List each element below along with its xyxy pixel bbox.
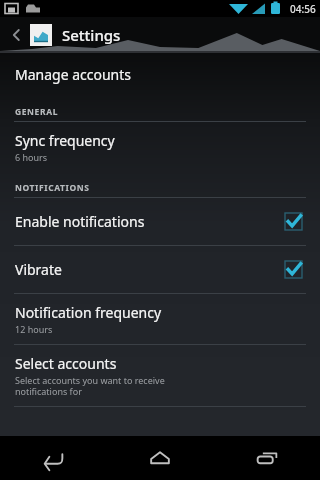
button[interactable]: Sync frequency	[0, 122, 320, 172]
staticText: Enable notifications	[15, 212, 285, 231]
staticText: Settings	[62, 25, 121, 45]
button[interactable]: Notification frequency	[0, 294, 320, 344]
staticText: Select accounts you want to receive noti…	[15, 374, 165, 397]
button[interactable]: Home	[106, 436, 213, 480]
button[interactable]: Vibrate	[0, 246, 320, 293]
staticText: 04:56	[290, 2, 316, 16]
staticText: 12 hours	[15, 323, 53, 335]
staticText: NOTIFICATIONS	[15, 182, 90, 194]
button[interactable]: Back	[0, 436, 106, 480]
button[interactable]: Manage accounts	[0, 53, 320, 96]
staticText: GENERAL	[15, 106, 58, 118]
staticText: Sync frequency	[15, 131, 115, 150]
button[interactable]: Enable notifications	[0, 198, 320, 245]
staticText: Select accounts	[15, 354, 117, 373]
button[interactable]: Up	[4, 22, 30, 48]
button[interactable]: Recent apps	[213, 436, 320, 480]
staticText: 6 hours	[15, 151, 48, 163]
button[interactable]: Select accounts	[0, 345, 320, 406]
staticText: Notification frequency	[15, 303, 162, 322]
staticText: Manage accounts	[15, 65, 132, 84]
staticText: Vibrate	[15, 260, 285, 279]
